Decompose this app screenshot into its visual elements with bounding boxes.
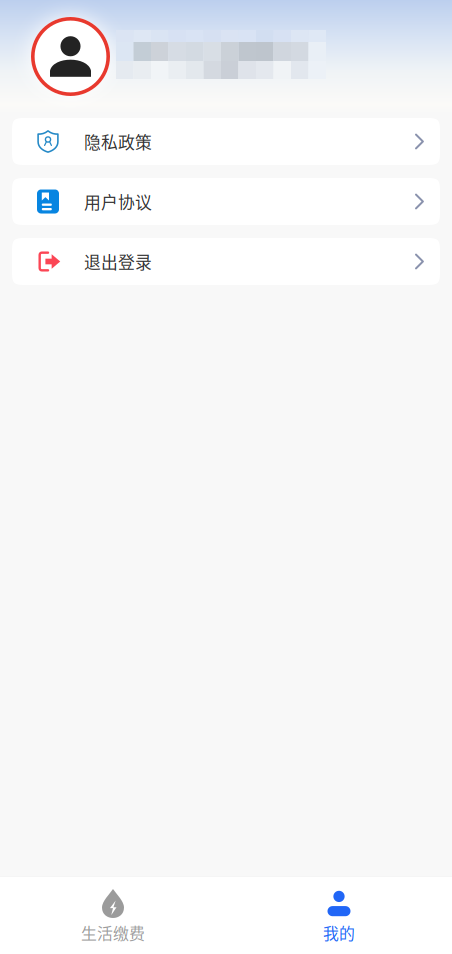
button[interactable]: 隐私政策: [12, 118, 440, 165]
staticText: 我的: [323, 921, 355, 944]
button[interactable]: 退出登录: [12, 238, 440, 285]
button[interactable]: 生活缴费: [0, 876, 226, 954]
staticText: 隐私政策: [84, 129, 152, 154]
button[interactable]: 我的: [226, 876, 452, 954]
staticText: 退出登录: [84, 249, 152, 274]
button[interactable]: 用户协议: [12, 178, 440, 225]
staticText: 生活缴费: [81, 921, 145, 944]
staticText: 用户协议: [84, 189, 152, 214]
